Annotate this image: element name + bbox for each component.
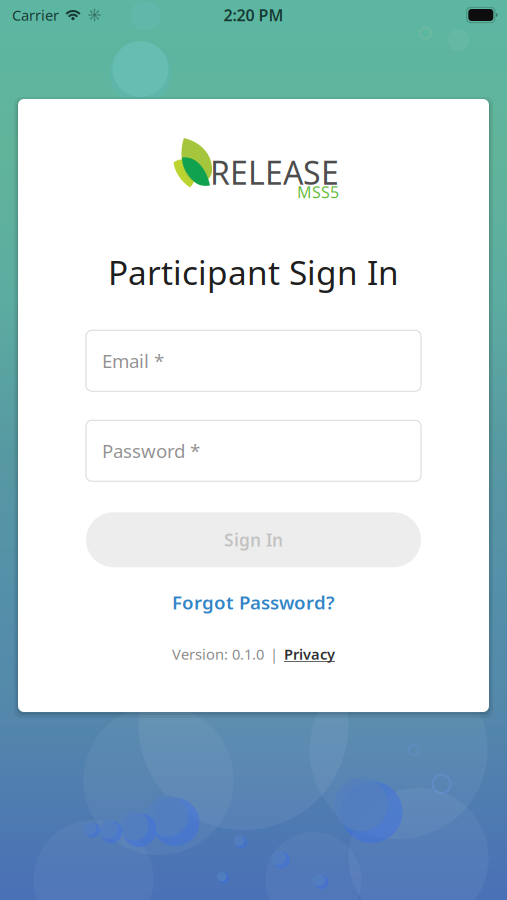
staticText: MSS5 [297, 181, 339, 203]
staticText: Privacy [284, 644, 335, 664]
staticText: Version: 0.1.0 [172, 644, 264, 664]
button[interactable]: Email * [86, 330, 421, 391]
staticText: RELEASE [210, 151, 339, 193]
staticText: Sign In [224, 528, 283, 551]
staticText: | [270, 644, 278, 664]
staticText: Carrier [12, 5, 59, 25]
staticText: Forgot Password? [172, 590, 335, 615]
button[interactable]: Privacy [284, 644, 335, 664]
staticText: 2:20 PM [223, 4, 283, 26]
button[interactable]: Password * [86, 420, 421, 481]
staticText: Password * [102, 438, 200, 463]
button[interactable]: Forgot Password? [86, 590, 421, 614]
staticText: Participant Sign In [108, 250, 399, 294]
button[interactable]: Sign In [86, 512, 421, 567]
staticText: Email * [102, 348, 164, 373]
